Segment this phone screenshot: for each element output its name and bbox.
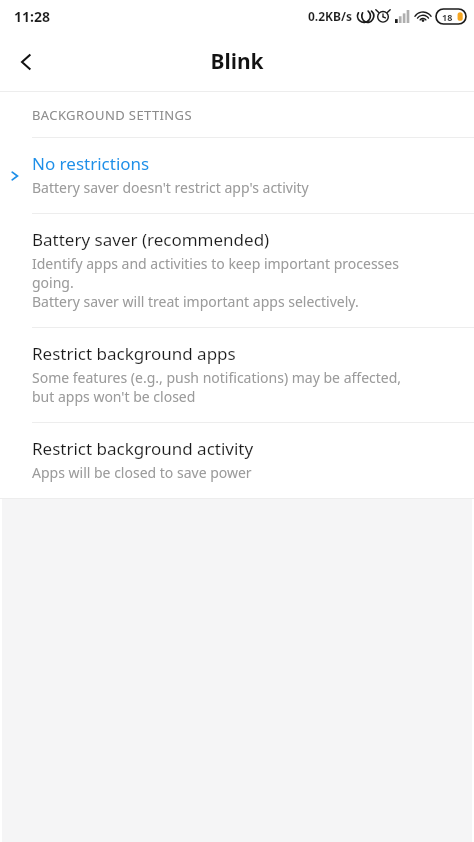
button[interactable]: Restrict background apps xyxy=(0,328,474,422)
staticText: going. xyxy=(32,273,74,292)
staticText: Blink xyxy=(210,47,264,76)
staticText: BACKGROUND SETTINGS xyxy=(32,106,193,124)
staticText: Identify apps and activities to keep imp… xyxy=(32,254,399,273)
button[interactable]: Back xyxy=(0,36,52,88)
staticText: Some features (e.g., push notifications)… xyxy=(32,368,402,387)
staticText: Restrict background apps xyxy=(32,342,236,365)
staticText: Restrict background activity xyxy=(32,437,254,460)
button[interactable]: Battery saver (recommended) xyxy=(0,214,474,327)
staticText: but apps won't be closed xyxy=(32,387,196,406)
staticText: 18 xyxy=(442,11,453,23)
button[interactable]: Restrict background activity xyxy=(0,423,474,498)
button[interactable]: No restrictions xyxy=(0,138,474,213)
staticText: Battery saver (recommended) xyxy=(32,228,270,251)
staticText: 0.2KB/s xyxy=(308,8,353,24)
staticText: Battery saver will treat important apps … xyxy=(32,292,359,311)
staticText: No restrictions xyxy=(32,152,150,175)
staticText: Apps will be closed to save power xyxy=(32,463,252,482)
staticText: Battery saver doesn't restrict app's act… xyxy=(32,178,309,197)
staticText: 11:28 xyxy=(14,7,50,26)
